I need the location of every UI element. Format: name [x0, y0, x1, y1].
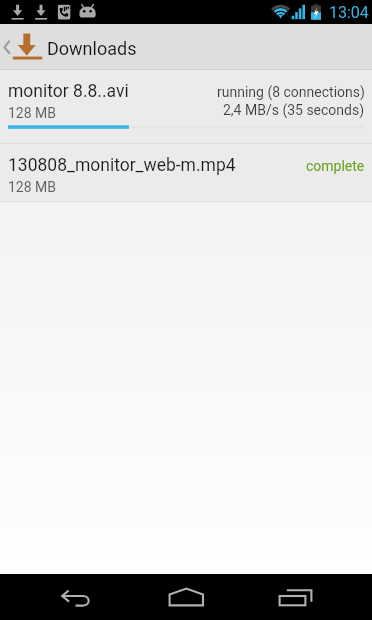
button[interactable]: Downloads: [0, 24, 372, 69]
staticText: running (8 connections): [217, 84, 365, 100]
button[interactable]: Home: [146, 574, 226, 620]
staticText: 13:04: [329, 3, 369, 22]
staticText: 2,4 MB/s (35 seconds): [223, 102, 365, 118]
staticText: 128 MB: [8, 105, 57, 121]
button[interactable]: [0, 24, 372, 69]
staticText: complete: [306, 158, 365, 174]
staticText: 130808_monitor_web-m.mp4: [8, 155, 236, 176]
button[interactable]: Back: [35, 574, 115, 620]
button[interactable]: monitor 8.8..avi: [0, 70, 372, 143]
button[interactable]: Recents: [256, 574, 336, 620]
button[interactable]: 130808_monitor_web-m.mp4: [0, 144, 372, 201]
staticText: 128 MB: [8, 179, 57, 195]
staticText: monitor 8.8..avi: [8, 81, 129, 102]
staticText: Downloads: [47, 38, 137, 59]
